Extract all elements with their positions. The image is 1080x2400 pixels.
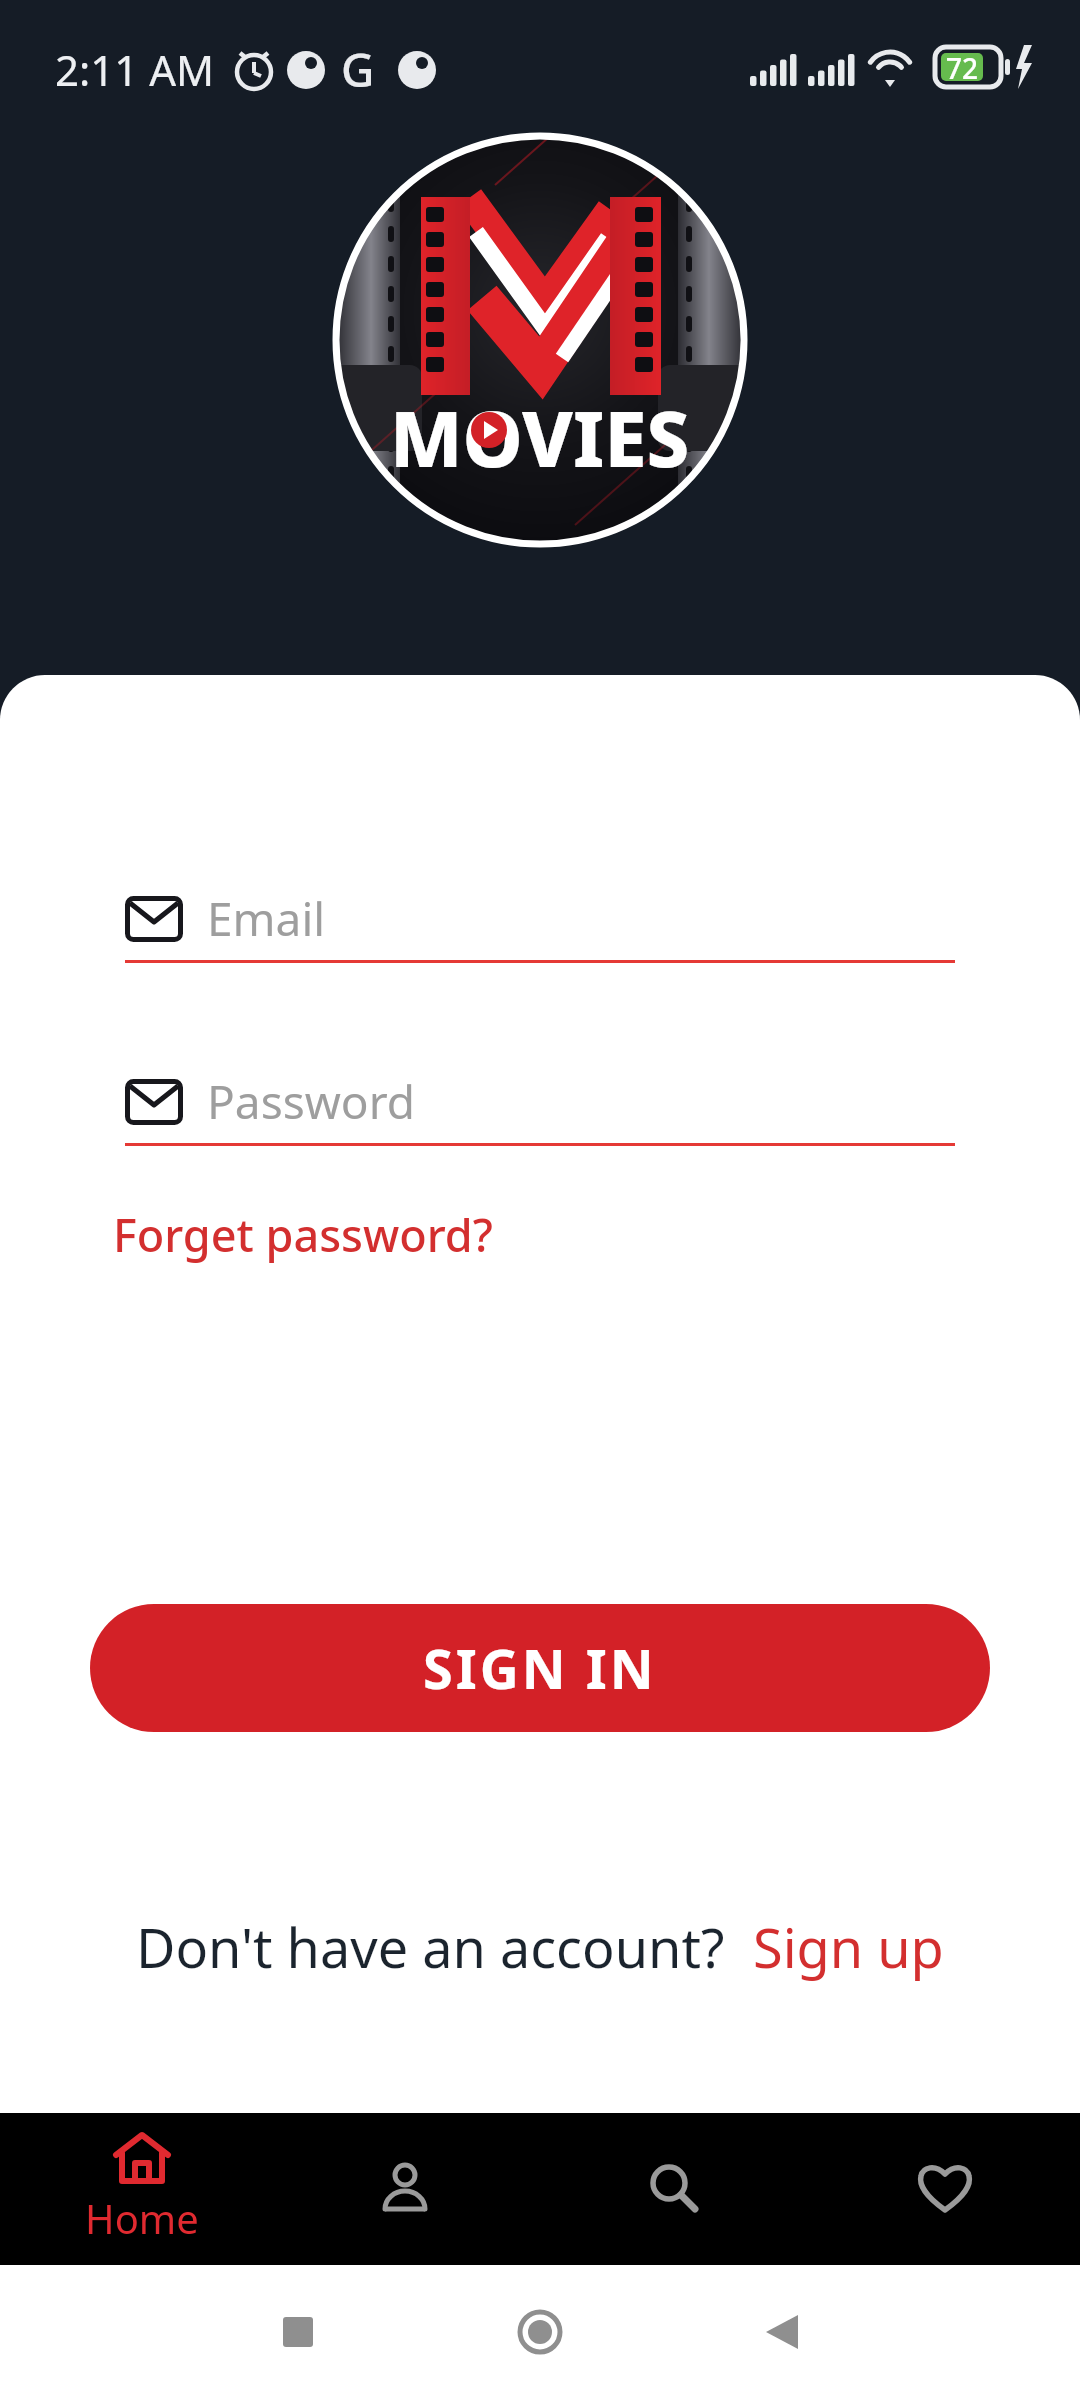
staticText: Don't have an account? (136, 1910, 725, 1984)
staticText: Password (207, 1070, 416, 1133)
staticText: Email (207, 887, 326, 950)
button[interactable]: Password (125, 1070, 955, 1146)
staticText: MOVIES (390, 386, 690, 490)
staticText: 72 (946, 49, 979, 87)
button[interactable]: Forget password? (113, 1204, 493, 1265)
button[interactable]: Sign up (753, 1910, 944, 1984)
staticText: 2:11 AM (55, 41, 215, 98)
button[interactable] (810, 2113, 1080, 2265)
button[interactable] (540, 2113, 810, 2265)
staticText: G (341, 38, 375, 101)
staticText: Forget password? (113, 1204, 493, 1265)
button[interactable]: Email (125, 887, 955, 963)
button[interactable]: Home (0, 2113, 270, 2265)
staticText: Sign up (753, 1910, 944, 1984)
button[interactable]: SIGN IN (90, 1604, 990, 1732)
staticText: Home (85, 2191, 199, 2245)
staticText: SIGN IN (423, 1631, 657, 1705)
button[interactable] (270, 2113, 540, 2265)
